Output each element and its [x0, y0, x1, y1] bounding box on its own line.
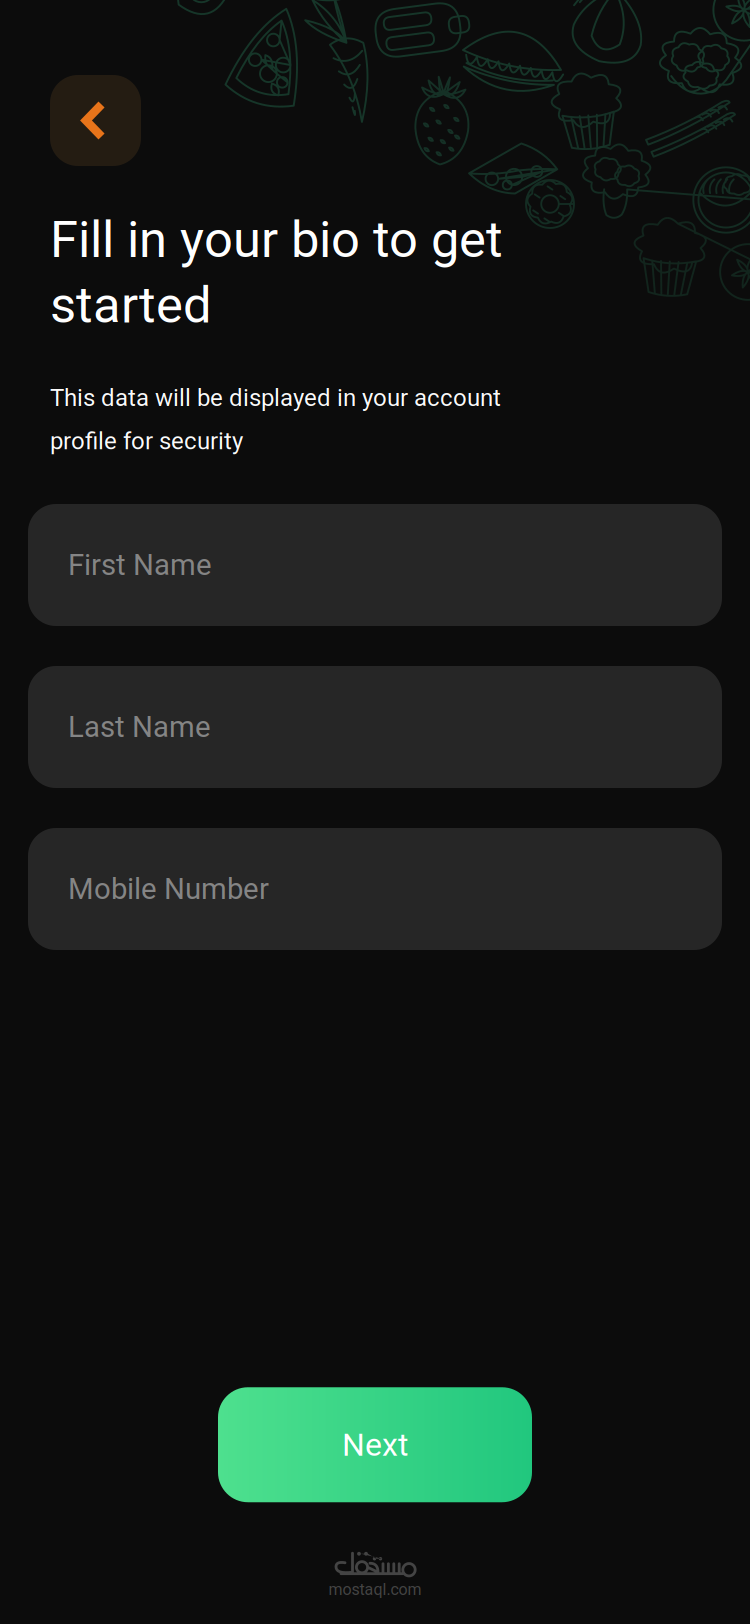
button[interactable]: Back — [50, 75, 141, 166]
staticText: Fill in your bio to get started — [50, 210, 503, 335]
staticText: Mobile Number — [68, 872, 269, 906]
staticText: This data will be displayed in your acco… — [50, 384, 501, 455]
button[interactable]: Mobile Number — [28, 828, 722, 950]
staticText: Next — [342, 1426, 408, 1463]
staticText: mostaql.com — [328, 1580, 421, 1599]
staticText: Last Name — [68, 710, 211, 744]
button[interactable]: Last Name — [28, 666, 722, 788]
button[interactable]: First Name — [28, 504, 722, 626]
staticText: First Name — [68, 548, 212, 582]
button[interactable]: Next — [218, 1387, 532, 1502]
